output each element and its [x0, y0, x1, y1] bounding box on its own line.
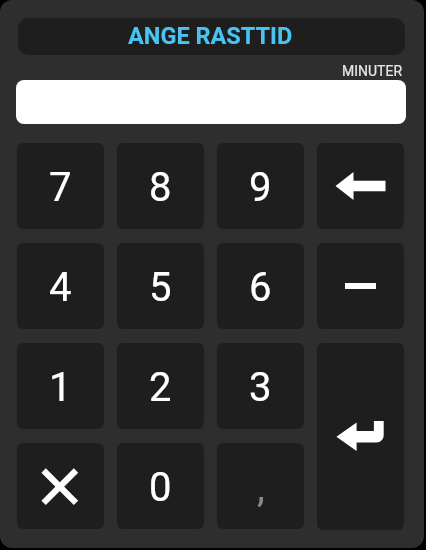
staticText: ANGE RASTTID — [128, 22, 293, 50]
button[interactable]: Minus — [317, 243, 404, 329]
button[interactable]: 6 — [217, 243, 304, 329]
button[interactable]: 0 — [117, 443, 204, 529]
staticText: MINUTER — [342, 63, 403, 79]
staticText: 8 — [149, 164, 172, 211]
staticText: 3 — [249, 364, 272, 411]
button[interactable] — [16, 80, 406, 124]
staticText: 1 — [49, 364, 72, 411]
button[interactable]: 9 — [217, 143, 304, 229]
staticText: 7 — [49, 164, 72, 211]
staticText: 0 — [149, 464, 172, 511]
button[interactable]: 3 — [217, 343, 304, 429]
button[interactable]: Enter — [317, 343, 404, 530]
button[interactable]: , — [217, 443, 304, 529]
button[interactable]: 4 — [17, 243, 104, 329]
staticText: 5 — [149, 264, 172, 311]
staticText: 4 — [49, 264, 72, 311]
staticText: 9 — [249, 164, 272, 211]
button[interactable]: 7 — [17, 143, 104, 229]
button[interactable]: Backspace — [317, 143, 404, 229]
button[interactable]: Clear — [17, 443, 104, 529]
button[interactable]: ANGE RASTTID — [18, 18, 405, 55]
button[interactable]: 2 — [117, 343, 204, 429]
button[interactable]: 1 — [17, 343, 104, 429]
button[interactable]: 8 — [117, 143, 204, 229]
button[interactable]: 5 — [117, 243, 204, 329]
staticText: 6 — [249, 264, 272, 311]
staticText: 2 — [149, 364, 172, 411]
staticText: , — [257, 464, 265, 511]
